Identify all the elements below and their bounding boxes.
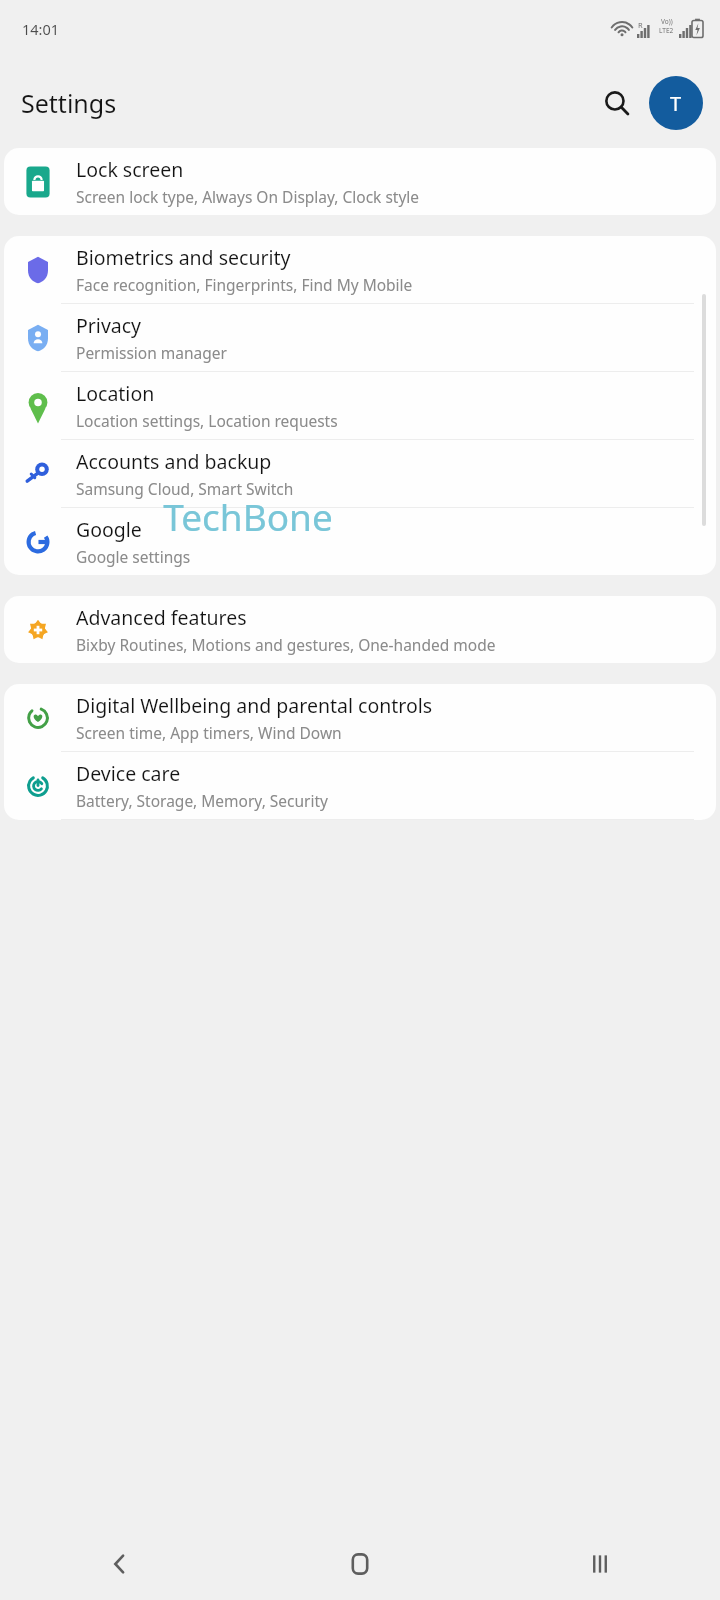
staticText: Face recognition, Fingerprints, Find My …	[76, 274, 413, 295]
staticText: Battery, Storage, Memory, Security	[76, 790, 329, 811]
staticText: Bixby Routines, Motions and gestures, On…	[76, 634, 496, 655]
staticText: Settings	[21, 86, 117, 120]
staticText: Screen lock type, Always On Display, Clo…	[76, 186, 420, 207]
button[interactable]: Search	[593, 79, 641, 127]
button[interactable]: Privacy	[4, 304, 716, 371]
staticText: Location	[76, 380, 155, 407]
staticText: 14:01	[22, 19, 60, 39]
staticText: LTE2	[659, 26, 674, 35]
staticText: Google	[76, 516, 142, 543]
staticText: Device care	[76, 760, 181, 787]
staticText: Permission manager	[76, 342, 227, 363]
staticText: T	[670, 90, 682, 117]
staticText: Samsung Cloud, Smart Switch	[76, 478, 294, 499]
button[interactable]: Account	[649, 76, 703, 130]
button[interactable]: Biometrics and security	[4, 236, 716, 303]
button[interactable]: Digital Wellbeing and parental controls	[4, 684, 716, 751]
button[interactable]: Lock screen	[4, 148, 716, 215]
staticText: Advanced features	[76, 604, 247, 631]
button[interactable]: Location	[4, 372, 716, 439]
button[interactable]: Home	[240, 1528, 480, 1600]
staticText: Accounts and backup	[76, 448, 272, 475]
button[interactable]: Advanced features	[4, 596, 716, 663]
button[interactable]: Device care	[4, 752, 716, 819]
staticText: TechBone	[163, 491, 333, 541]
staticText: Screen time, App timers, Wind Down	[76, 722, 342, 743]
staticText: Digital Wellbeing and parental controls	[76, 692, 433, 719]
staticText: Biometrics and security	[76, 244, 291, 271]
staticText: R	[638, 20, 643, 30]
staticText: Lock screen	[76, 156, 184, 183]
staticText: Location settings, Location requests	[76, 410, 338, 431]
staticText: Vo))	[661, 17, 673, 26]
button[interactable]: Google	[4, 508, 716, 575]
button[interactable]: Accounts and backup	[4, 440, 716, 507]
staticText: Google settings	[76, 546, 191, 567]
button[interactable]: Recent apps	[480, 1528, 720, 1600]
button[interactable]: Back	[0, 1528, 240, 1600]
staticText: Privacy	[76, 312, 142, 339]
